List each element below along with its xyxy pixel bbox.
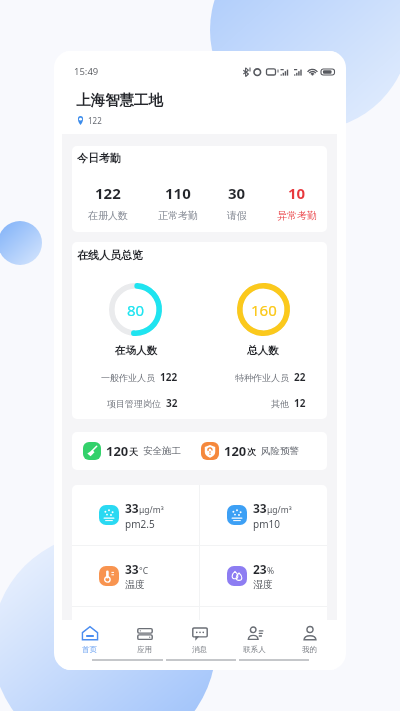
staticText: % (267, 565, 275, 577)
button[interactable]: 33 (200, 485, 327, 545)
staticText: 湿度 (253, 578, 273, 591)
staticText: μg/m³ (267, 504, 292, 516)
staticText: 总人数 (247, 344, 279, 357)
staticText: 消息 (192, 645, 207, 654)
staticText: 在册人数 (88, 209, 128, 222)
button[interactable]: 120 (72, 432, 199, 470)
staticText: 正常考勤 (158, 209, 198, 222)
staticText: 特种作业人员 (235, 372, 289, 383)
staticText: 160 (251, 300, 277, 320)
staticText: 22 (294, 370, 306, 384)
staticText: 项目管理岗位 (107, 398, 161, 409)
staticText: 33 (125, 500, 139, 516)
staticText: 120 (106, 442, 129, 460)
button[interactable]: 23 (200, 546, 327, 606)
button[interactable]: 120 (199, 432, 327, 470)
staticText: pm2.5 (125, 517, 155, 531)
staticText: 在线人员总览 (77, 248, 143, 262)
staticText: 温度 (125, 578, 145, 591)
staticText: 今日考勤 (77, 151, 121, 165)
staticText: 33 (125, 561, 139, 577)
staticText: 异常考勤 (277, 209, 317, 222)
staticText: 15:49 (74, 65, 99, 78)
button[interactable]: 我的 (282, 620, 337, 658)
staticText: pm10 (253, 517, 280, 531)
staticText: 122 (160, 370, 178, 384)
staticText: 上海智慧工地 (76, 91, 163, 109)
button[interactable]: 联系人 (227, 620, 282, 658)
staticText: 110 (165, 183, 191, 203)
staticText: 风险预警 (261, 445, 299, 457)
staticText: 122 (95, 183, 121, 203)
staticText: 32 (166, 396, 178, 410)
staticText: 请假 (227, 209, 247, 222)
staticText: 一般作业人员 (101, 372, 155, 383)
staticText: 30 (228, 183, 246, 203)
button[interactable]: 消息 (172, 620, 227, 658)
staticText: 23 (253, 561, 267, 577)
button[interactable]: 今日考勤 (72, 146, 327, 232)
button[interactable]: 应用 (117, 620, 172, 658)
staticText: 在场人数 (115, 344, 157, 357)
staticText: 10 (288, 183, 306, 203)
staticText: 首页 (82, 645, 97, 654)
staticText: 120 (224, 442, 247, 460)
button[interactable]: 33 (72, 546, 199, 606)
staticText: 80 (127, 300, 145, 320)
staticText: 其他 (271, 398, 289, 409)
staticText: 天 (129, 446, 138, 457)
staticText: 122 (88, 115, 102, 126)
staticText: 联系人 (243, 645, 266, 654)
button[interactable]: 33 (72, 485, 199, 545)
staticText: μg/m³ (139, 504, 164, 516)
staticText: °C (139, 565, 149, 577)
staticText: 次 (247, 446, 256, 457)
staticText: 安全施工 (143, 445, 181, 457)
button[interactable]: 首页 (62, 620, 117, 658)
staticText: 12 (294, 396, 306, 410)
staticText: 我的 (302, 645, 317, 654)
button[interactable]: 在线人员总览 (72, 242, 327, 419)
staticText: 33 (253, 500, 267, 516)
staticText: 应用 (137, 645, 152, 654)
